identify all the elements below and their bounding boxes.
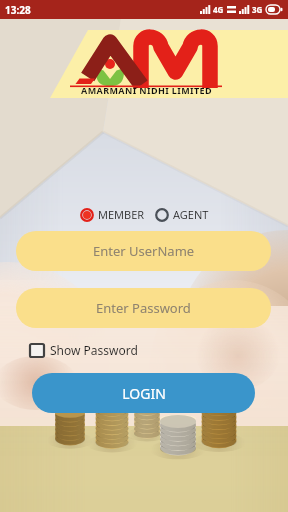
staticText: Enter UserName: [93, 242, 195, 260]
staticText: AGENT: [173, 207, 209, 222]
button[interactable]: Enter Password: [16, 288, 271, 328]
button[interactable]: Enter UserName: [16, 231, 271, 271]
button[interactable]: AGENT: [155, 207, 209, 222]
staticText: 4G: [213, 4, 224, 15]
staticText: Enter Password: [96, 299, 191, 317]
staticText: LOGIN: [122, 384, 166, 403]
button[interactable]: Show Password: [30, 342, 138, 358]
button[interactable]: MEMBER: [80, 207, 145, 222]
staticText: AMARMANI NIDHI LIMITED: [81, 84, 212, 96]
staticText: 13:28: [5, 3, 31, 17]
staticText: MEMBER: [98, 207, 145, 222]
staticText: 3G: [252, 4, 263, 15]
button[interactable]: LOGIN: [32, 373, 255, 413]
staticText: Show Password: [50, 342, 138, 358]
